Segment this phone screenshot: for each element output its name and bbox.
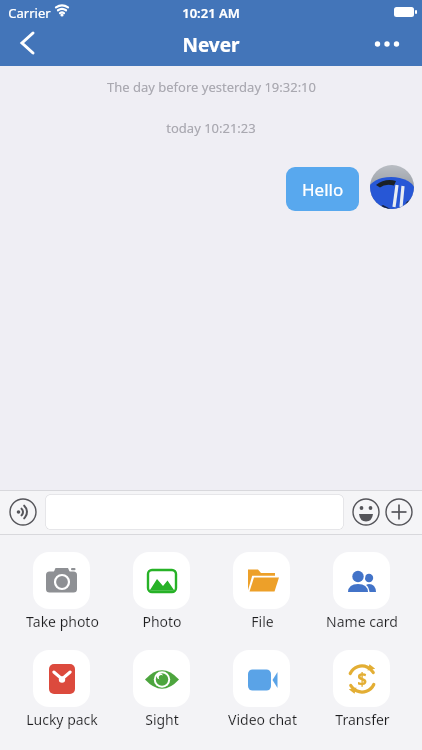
button[interactable] <box>351 497 381 527</box>
button[interactable] <box>333 552 390 609</box>
button[interactable]: $ <box>333 650 390 707</box>
staticText: File <box>251 612 274 631</box>
staticText: Hello <box>302 178 344 201</box>
staticText: Name card <box>326 612 398 631</box>
button[interactable] <box>10 25 50 61</box>
button[interactable] <box>33 650 90 707</box>
button[interactable] <box>370 165 414 209</box>
button[interactable] <box>33 552 90 609</box>
staticText: Sight <box>145 710 179 729</box>
button[interactable]: Hello <box>286 167 359 211</box>
staticText: 10:21 AM <box>182 4 240 22</box>
button[interactable] <box>133 552 190 609</box>
staticText: The day before yesterday 19:32:10 <box>107 78 316 96</box>
staticText: $ <box>357 668 367 691</box>
staticText: Carrier <box>8 4 51 22</box>
staticText: Take photo <box>26 612 99 631</box>
button[interactable] <box>384 497 414 527</box>
button[interactable] <box>45 494 344 530</box>
staticText: Transfer <box>335 710 390 729</box>
button[interactable] <box>233 650 290 707</box>
button[interactable] <box>233 552 290 609</box>
staticText: today 10:21:23 <box>166 119 256 137</box>
button[interactable] <box>133 650 190 707</box>
staticText: Photo <box>142 612 182 631</box>
staticText: Lucky pack <box>26 710 98 729</box>
button[interactable] <box>366 25 412 61</box>
staticText: Never <box>182 32 240 58</box>
button[interactable] <box>8 497 38 527</box>
staticText: Video chat <box>228 710 297 729</box>
